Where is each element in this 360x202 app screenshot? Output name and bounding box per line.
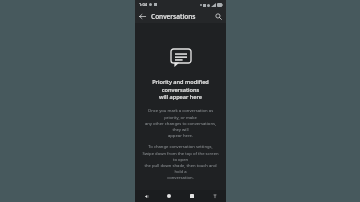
- button[interactable]: Recent apps: [180, 190, 203, 202]
- staticText: 1:04: [139, 2, 147, 7]
- button[interactable]: Search: [213, 11, 224, 22]
- button[interactable]: More: [203, 190, 226, 202]
- staticText: To change conversation settings, Swipe d…: [142, 144, 219, 180]
- staticText: Once you mark a conversation as priority…: [142, 108, 219, 138]
- button[interactable]: Back: [135, 190, 157, 202]
- staticText: Conversations: [151, 12, 196, 21]
- button[interactable]: Home: [157, 190, 180, 202]
- staticText: Priority and modified conversations will…: [142, 78, 219, 101]
- button[interactable]: Back: [137, 11, 148, 22]
